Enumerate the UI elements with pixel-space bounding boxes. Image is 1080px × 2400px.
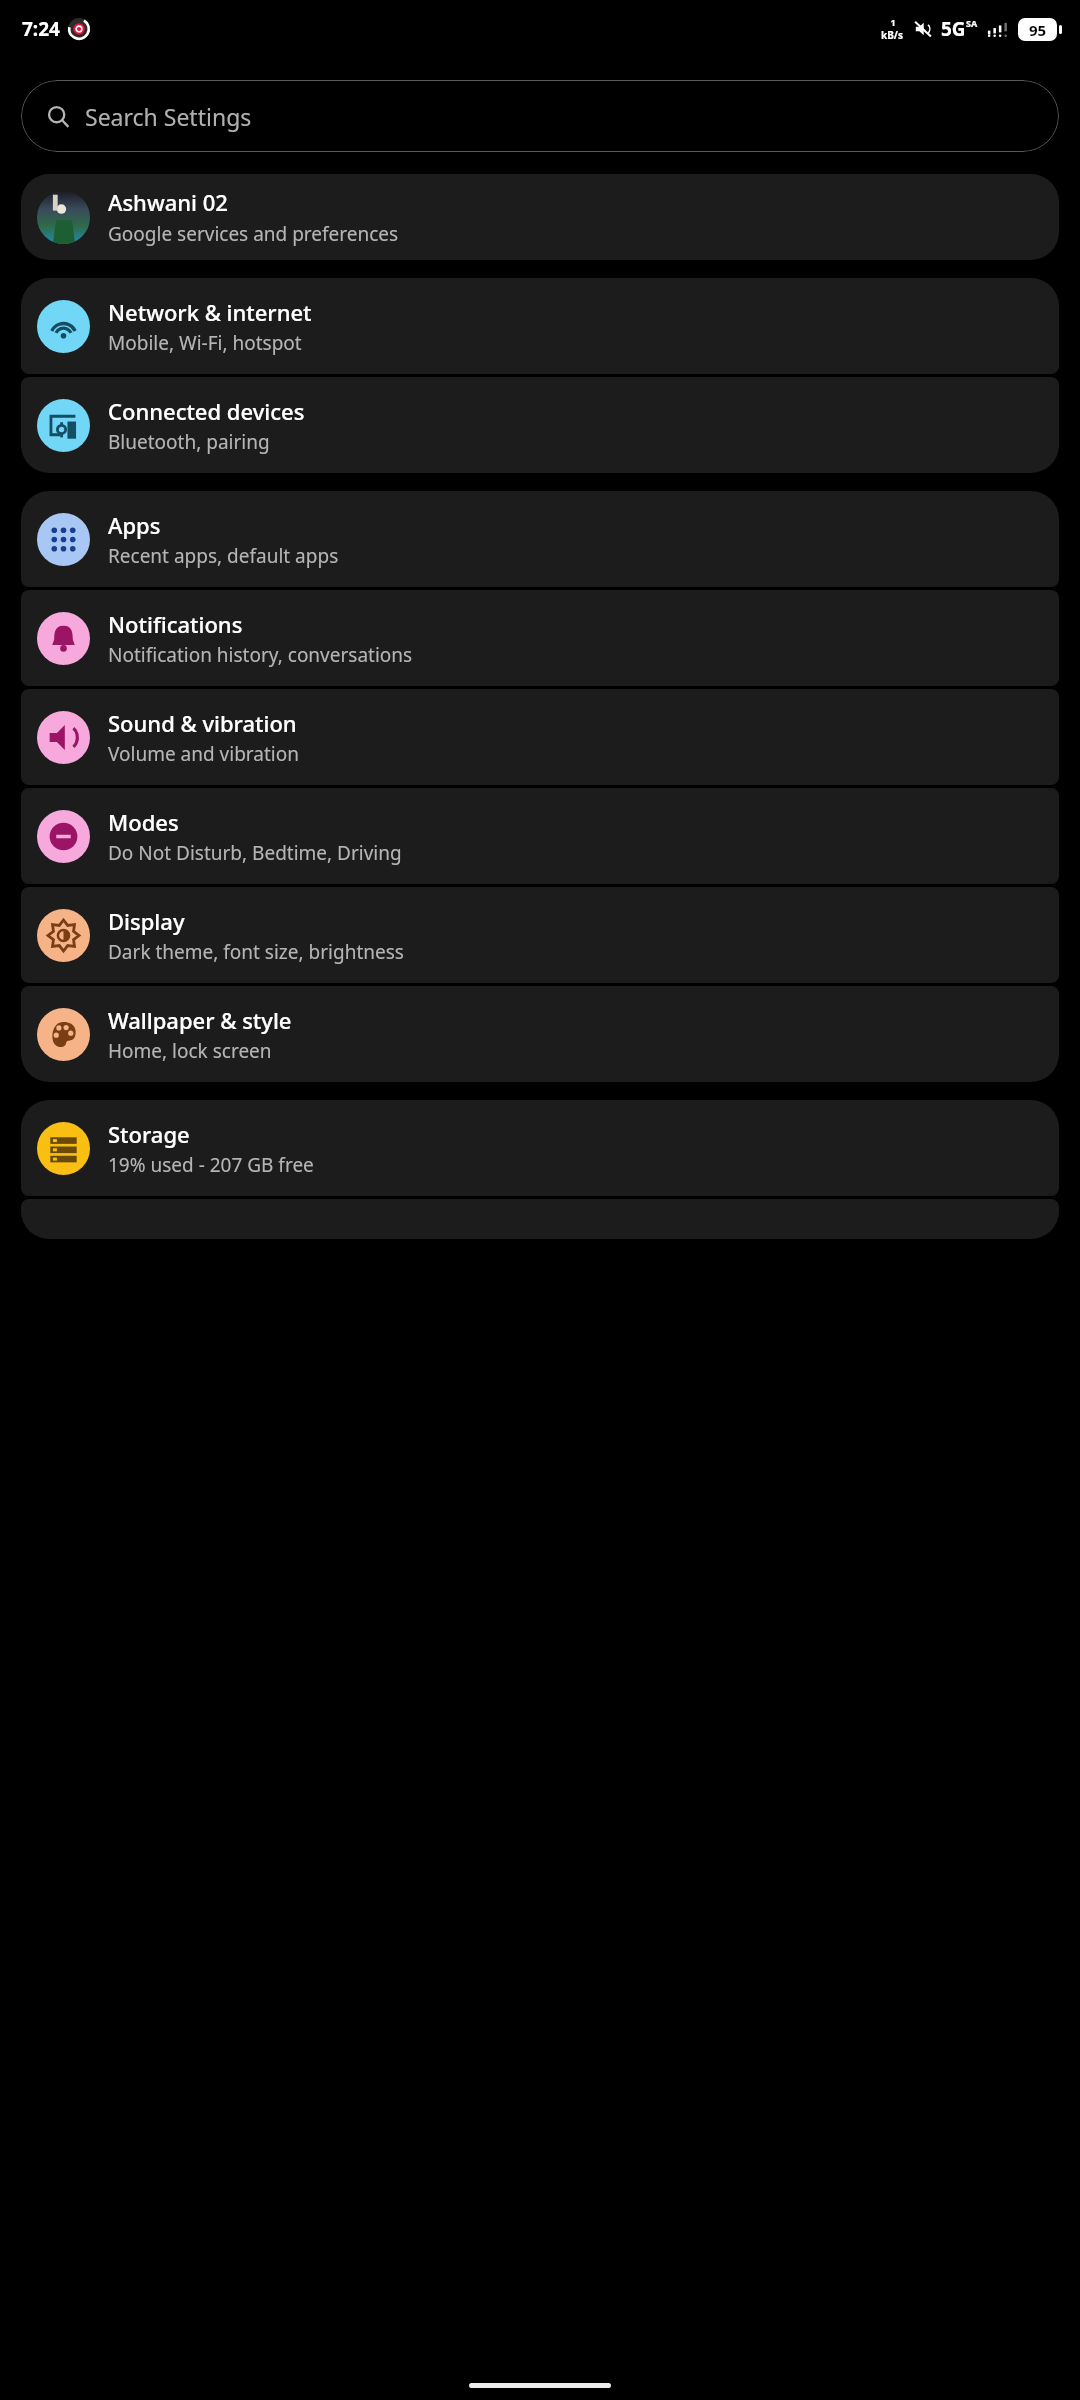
staticText: Display: [108, 906, 185, 936]
button[interactable]: Search Settings: [21, 80, 1059, 152]
button[interactable]: Notifications: [21, 590, 1059, 686]
staticText: 19% used - 207 GB free: [108, 1152, 314, 1178]
staticText: Connected devices: [108, 396, 305, 426]
button[interactable]: Display: [21, 887, 1059, 983]
staticText: 1: [890, 16, 896, 28]
staticText: Notification history, conversations: [108, 642, 413, 668]
staticText: Mobile, Wi-Fi, hotspot: [108, 330, 302, 356]
staticText: Wallpaper & style: [108, 1005, 292, 1035]
staticText: SA: [966, 17, 978, 29]
staticText: Google services and preferences: [108, 221, 399, 247]
button[interactable]: Ashwani 02: [21, 174, 1059, 260]
staticText: Storage: [108, 1119, 190, 1149]
staticText: Network & internet: [108, 297, 312, 327]
staticText: 5G: [941, 16, 966, 42]
staticText: Home, lock screen: [108, 1038, 272, 1064]
button[interactable]: Modes: [21, 788, 1059, 884]
staticText: Notifications: [108, 609, 243, 639]
button[interactable]: Sound & vibration: [21, 689, 1059, 785]
button[interactable]: Wallpaper & style: [21, 986, 1059, 1082]
staticText: Dark theme, font size, brightness: [108, 939, 404, 965]
staticText: kB/s: [881, 28, 904, 42]
staticText: Bluetooth, pairing: [108, 429, 270, 455]
staticText: Sound & vibration: [108, 708, 297, 738]
staticText: Recent apps, default apps: [108, 543, 339, 569]
button[interactable]: Storage: [21, 1100, 1059, 1196]
staticText: Apps: [108, 510, 161, 540]
staticText: Volume and vibration: [108, 741, 299, 767]
staticText: Do Not Disturb, Bedtime, Driving: [108, 840, 402, 866]
staticText: Ashwani 02: [108, 187, 228, 217]
button[interactable]: Network & internet: [21, 278, 1059, 374]
button[interactable]: Connected devices: [21, 377, 1059, 473]
staticText: Modes: [108, 807, 179, 837]
staticText: Search Settings: [85, 101, 252, 132]
staticText: 95: [1029, 20, 1047, 40]
staticText: 7:24: [22, 16, 60, 42]
button[interactable]: Apps: [21, 491, 1059, 587]
